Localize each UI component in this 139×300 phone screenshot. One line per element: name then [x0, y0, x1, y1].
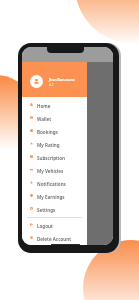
button[interactable]: Notifications	[22, 177, 87, 190]
button[interactable]: Settings	[22, 203, 87, 216]
staticText: Logout	[37, 223, 53, 229]
staticText: Jhon Borunono	[49, 77, 75, 82]
staticText: Wallet	[37, 116, 52, 122]
staticText: Settings	[37, 207, 56, 213]
button[interactable]: Subscription	[22, 151, 87, 164]
staticText: Notifications	[37, 181, 66, 187]
staticText: My Vehicles	[37, 168, 64, 174]
button[interactable]: Delete Account	[22, 232, 87, 245]
staticText: My Rating	[37, 142, 60, 148]
button[interactable]: Home	[22, 99, 87, 112]
button[interactable]: My Vehicles	[22, 164, 87, 177]
button[interactable]: My Rating	[22, 138, 87, 151]
button[interactable]: Logout	[22, 219, 87, 232]
staticText: Subscription	[37, 155, 66, 161]
staticText: Delete Account	[37, 236, 72, 242]
staticText: My Earnings	[37, 194, 65, 200]
button[interactable]: My Earnings	[22, 190, 87, 203]
staticText: Home	[37, 103, 51, 109]
staticText: 4.7	[49, 83, 54, 87]
staticText: Bookings	[37, 129, 58, 135]
button[interactable]: Wallet	[22, 112, 87, 125]
button[interactable]: Bookings	[22, 125, 87, 138]
